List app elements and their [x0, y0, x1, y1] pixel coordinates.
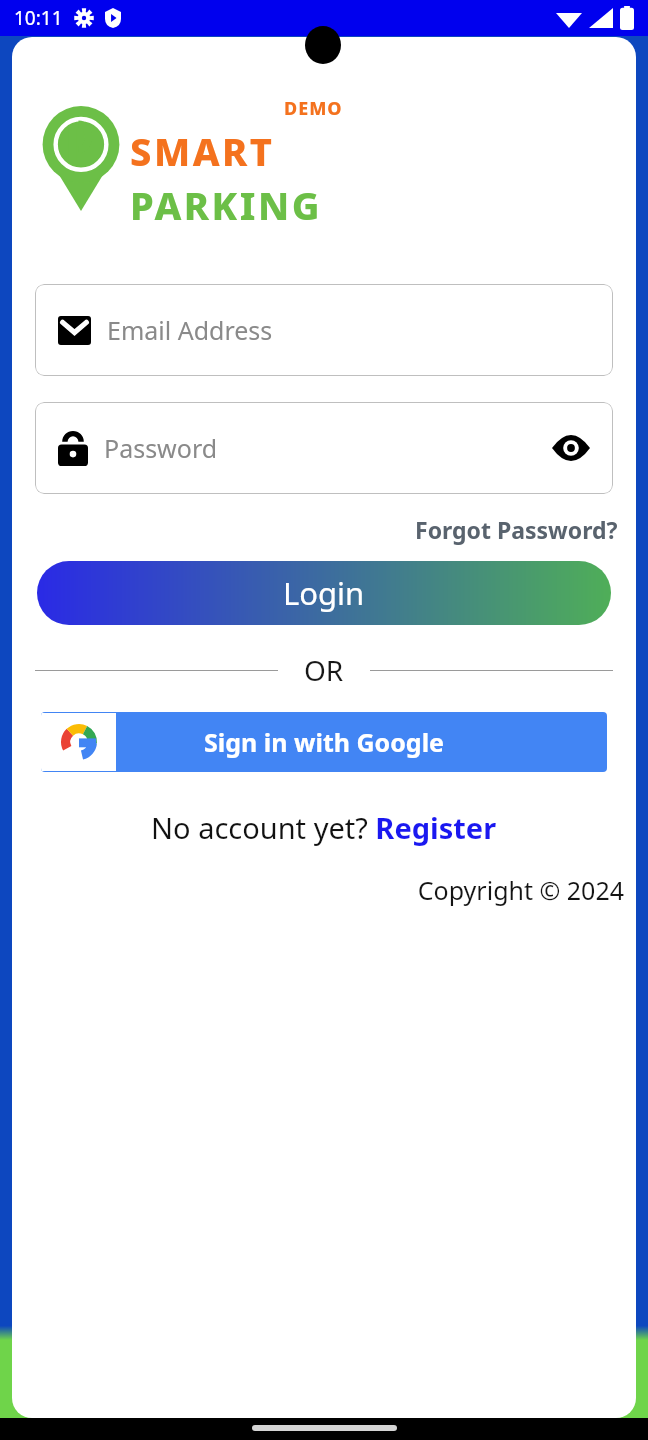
staticText: 10:11: [14, 5, 63, 31]
staticText: SMART: [130, 125, 275, 177]
button[interactable]: Password: [35, 402, 613, 494]
button[interactable]: Forgot Password?: [409, 508, 624, 551]
staticText: PARKING: [130, 179, 322, 231]
staticText: OR: [304, 651, 344, 689]
button[interactable]: Sign in with Google: [41, 712, 607, 772]
staticText: Copyright © 2024: [417, 873, 624, 907]
button[interactable]: No account yet? Register: [147, 804, 501, 851]
button[interactable]: Show password: [549, 426, 593, 470]
staticText: Login: [283, 572, 365, 614]
staticText: Email Address: [107, 313, 273, 347]
button[interactable]: Login: [37, 561, 611, 625]
staticText: Password: [104, 431, 218, 465]
staticText: No account yet? Register: [151, 808, 497, 847]
staticText: DEMO: [284, 96, 343, 121]
staticText: Sign in with Google: [204, 725, 445, 759]
staticText: Forgot Password?: [415, 514, 618, 545]
button[interactable]: Email Address: [35, 284, 613, 376]
